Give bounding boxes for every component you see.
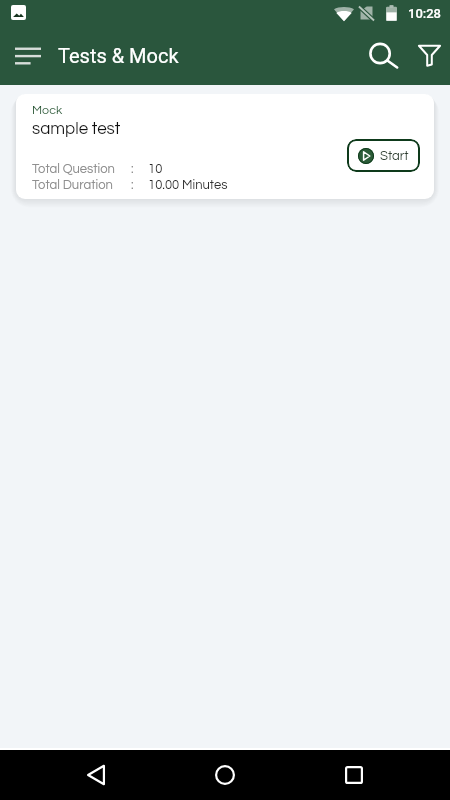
staticText: 10.00 Minutes: [148, 178, 228, 191]
staticText: Start: [380, 149, 409, 162]
staticText: 10: [148, 162, 163, 175]
staticText: Total Duration: [32, 178, 113, 191]
button[interactable]: Back: [71, 750, 121, 800]
button[interactable]: Recent apps: [329, 750, 379, 800]
button[interactable]: Mock: [16, 94, 434, 199]
button[interactable]: Home: [200, 750, 250, 800]
button[interactable]: Filter: [408, 25, 450, 85]
staticText: sample test: [32, 120, 121, 138]
button[interactable]: Start: [347, 139, 420, 172]
staticText: :: [131, 162, 134, 175]
button[interactable]: Search: [360, 25, 408, 85]
staticText: Tests & Mock: [58, 44, 179, 67]
staticText: Mock: [32, 104, 63, 117]
staticText: 10:28: [408, 6, 442, 21]
staticText: Total Question: [32, 162, 115, 175]
staticText: :: [131, 178, 134, 191]
button[interactable]: Menu: [0, 25, 56, 85]
